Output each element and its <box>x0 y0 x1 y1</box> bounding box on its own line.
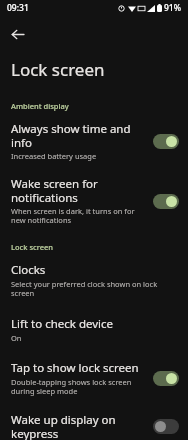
button[interactable]: Wake screen for notifications <box>0 176 188 226</box>
staticText: Wake screen for notifications <box>11 176 147 205</box>
staticText: Always show time and info <box>11 121 147 150</box>
staticText: Lift to check device <box>11 316 114 332</box>
staticText: On <box>11 333 22 343</box>
other: Wake up display on keypress <box>153 419 179 434</box>
other: Wake screen for notifications <box>153 194 179 209</box>
staticText: 91% <box>164 2 181 14</box>
staticText: Tap to show lock screen <box>11 360 139 376</box>
button[interactable]: Tap to show lock screen <box>0 360 188 397</box>
button[interactable]: Always show time and info <box>0 121 188 161</box>
button[interactable]: Wake up display on keypress <box>0 412 188 440</box>
staticText: Lock screen <box>11 242 54 252</box>
other: Always show time and info <box>153 134 179 149</box>
button[interactable]: Clocks <box>0 262 188 299</box>
staticText: Wake up display on keypress <box>11 412 147 440</box>
staticText: Increased battery usage <box>11 151 97 161</box>
staticText: Clocks <box>11 262 46 278</box>
button[interactable]: Back <box>5 22 29 46</box>
other: Tap to show lock screen <box>153 371 179 386</box>
staticText: Lock screen <box>11 58 105 81</box>
staticText: Double-tapping shows lock screen during … <box>11 377 147 397</box>
staticText: Select your preferred clock shown on loc… <box>11 279 173 299</box>
staticText: When screen is dark, it turns on for new… <box>11 206 147 226</box>
button[interactable]: Lift to check device <box>0 316 188 343</box>
staticText: 09:31 <box>7 2 29 14</box>
staticText: Ambient display <box>11 101 69 111</box>
